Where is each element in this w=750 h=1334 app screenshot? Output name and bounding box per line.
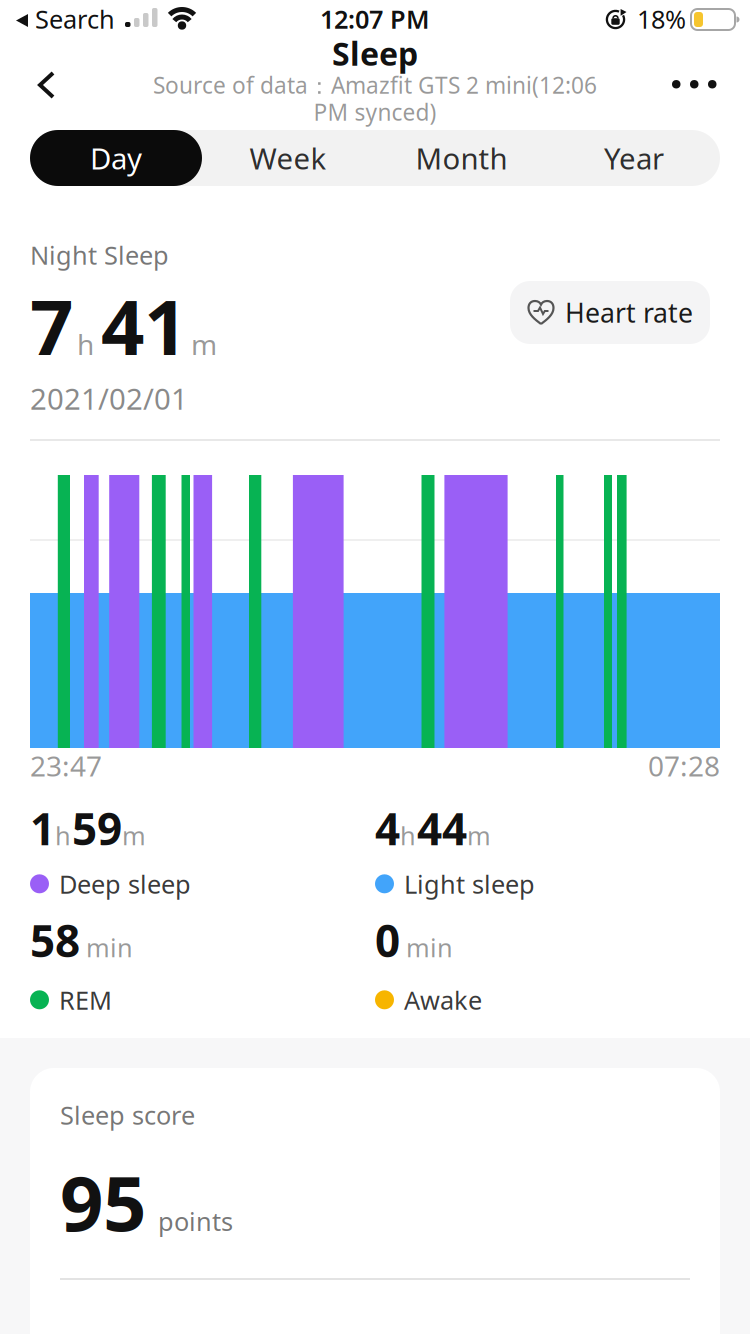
staticText: h (77, 325, 94, 363)
staticText: 07:28 (648, 747, 720, 784)
staticText: 7 (30, 275, 73, 376)
button[interactable] (662, 70, 726, 98)
staticText: 1 (30, 799, 55, 857)
staticText: 0 (375, 911, 400, 969)
staticText: 58 (30, 911, 80, 969)
staticText: 44 (417, 799, 467, 857)
staticText: points (158, 1204, 233, 1238)
button[interactable]: Day (30, 130, 202, 186)
staticText: 95 (60, 1151, 146, 1252)
staticText: m (122, 819, 146, 852)
button[interactable]: Week (202, 130, 374, 186)
staticText: Year (604, 138, 664, 177)
staticText: h (400, 819, 416, 852)
staticText: Day (90, 138, 142, 177)
staticText: m (467, 819, 491, 852)
staticText: Search (35, 2, 115, 36)
staticText: Deep sleep (59, 867, 191, 901)
staticText: 2021/02/01 (30, 379, 188, 418)
staticText: REM (59, 983, 112, 1017)
staticText: 41 (101, 275, 187, 376)
staticText: h (55, 819, 71, 852)
staticText: 18% (637, 2, 686, 36)
staticText: Heart rate (565, 295, 693, 330)
staticText: PM synced) (313, 97, 436, 127)
staticText: min (406, 931, 453, 964)
button[interactable]: Search (16, 2, 115, 36)
staticText: Source of data：Amazfit GTS 2 mini(12:06 (153, 70, 597, 100)
staticText: Week (249, 138, 326, 177)
staticText: Month (415, 138, 507, 177)
button[interactable]: Year (548, 130, 720, 186)
staticText: 59 (72, 799, 122, 857)
button[interactable]: Month (375, 130, 548, 186)
staticText: 12:07 PM (320, 2, 430, 36)
staticText: Awake (404, 983, 482, 1017)
staticText: m (191, 325, 217, 363)
button[interactable] (26, 60, 67, 110)
staticText: Night Sleep (30, 238, 169, 272)
staticText: 4 (375, 799, 400, 857)
staticText: Light sleep (404, 867, 535, 901)
staticText: Sleep (332, 32, 418, 74)
button[interactable]: Heart rate (510, 281, 710, 344)
staticText: Sleep score (60, 1098, 195, 1132)
staticText: 23:47 (30, 747, 102, 784)
staticText: min (86, 931, 133, 964)
